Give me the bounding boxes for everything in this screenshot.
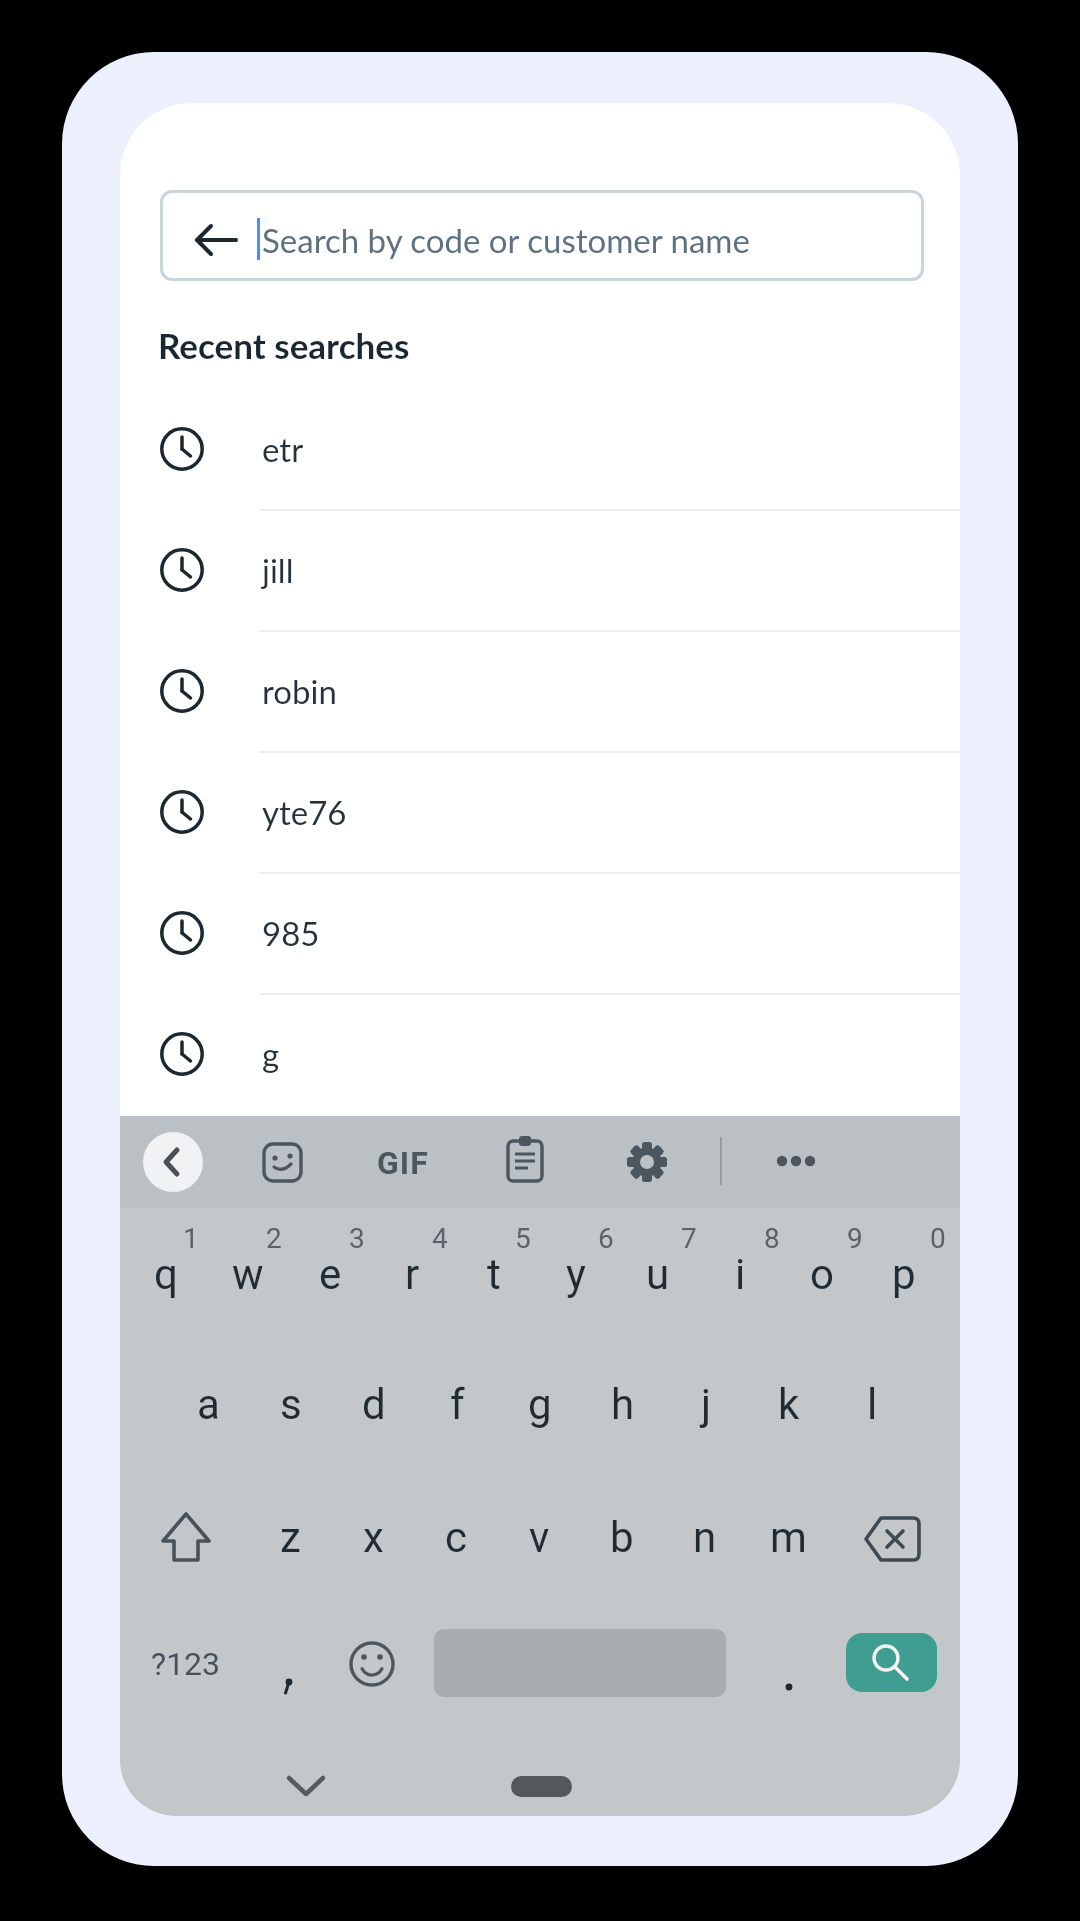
staticText: b [610, 1513, 634, 1562]
staticText: h [611, 1380, 635, 1429]
staticText: 1 [183, 1222, 199, 1255]
staticText: k [778, 1380, 800, 1429]
staticText: z [280, 1513, 301, 1562]
staticText: g [262, 1034, 280, 1074]
button[interactable]: u [603, 1218, 713, 1330]
staticText: Search by code or customer name [262, 220, 750, 260]
button[interactable]: z [235, 1481, 345, 1593]
button[interactable]: v [484, 1481, 594, 1593]
staticText: e [319, 1250, 342, 1299]
staticText: f [450, 1380, 465, 1429]
button[interactable]: l [817, 1348, 927, 1460]
staticText: a [197, 1380, 220, 1429]
button[interactable]: a [153, 1348, 263, 1460]
button[interactable]: g [120, 994, 960, 1114]
button[interactable]: p [849, 1218, 959, 1330]
button[interactable] [759, 1654, 819, 1714]
staticText: x [363, 1513, 384, 1562]
staticText: g [528, 1380, 552, 1429]
button[interactable]: etr [120, 389, 960, 509]
button[interactable] [852, 1499, 932, 1579]
button[interactable]: b [567, 1481, 677, 1593]
button[interactable] [511, 1776, 572, 1797]
button[interactable]: d [319, 1348, 429, 1460]
button[interactable] [160, 190, 924, 281]
button[interactable] [495, 1132, 555, 1192]
button[interactable]: y [521, 1218, 631, 1330]
staticText: etr [262, 429, 304, 469]
staticText: 985 [262, 913, 320, 953]
button[interactable] [846, 1633, 937, 1692]
button[interactable] [143, 1132, 203, 1192]
staticText: 3 [349, 1222, 365, 1255]
staticText: o [810, 1250, 834, 1299]
button[interactable]: r [357, 1218, 467, 1330]
button[interactable]: m [733, 1481, 843, 1593]
staticText: Recent searches [158, 324, 410, 366]
button[interactable] [252, 1132, 312, 1192]
staticText: 0 [930, 1222, 946, 1255]
button[interactable]: j [651, 1348, 761, 1460]
button[interactable]: yte76 [120, 752, 960, 872]
staticText: 6 [598, 1222, 614, 1255]
staticText: 8 [764, 1222, 780, 1255]
button[interactable] [276, 1766, 336, 1806]
staticText: 7 [681, 1222, 697, 1255]
staticText: i [735, 1250, 746, 1299]
staticText: c [445, 1513, 467, 1562]
staticText: 2 [266, 1222, 282, 1255]
button[interactable]: i [685, 1218, 795, 1330]
button[interactable]: e [275, 1218, 385, 1330]
staticText: w [232, 1250, 264, 1299]
button[interactable] [766, 1132, 826, 1192]
button[interactable]: x [318, 1481, 428, 1593]
button[interactable]: f [402, 1348, 512, 1460]
staticText: y [566, 1250, 586, 1299]
button[interactable]: c [401, 1481, 511, 1593]
staticText: n [693, 1513, 717, 1562]
button[interactable]: g [485, 1348, 595, 1460]
button[interactable]: o [767, 1218, 877, 1330]
staticText: s [280, 1380, 302, 1429]
button[interactable]: q [120, 1218, 221, 1330]
button[interactable] [186, 210, 246, 270]
button[interactable] [342, 1634, 402, 1694]
staticText: GIF [377, 1144, 429, 1182]
staticText: t [487, 1250, 501, 1299]
button[interactable] [617, 1132, 677, 1192]
button[interactable]: s [236, 1348, 346, 1460]
button[interactable]: k [734, 1348, 844, 1460]
staticText: d [362, 1380, 386, 1429]
staticText: p [892, 1250, 916, 1299]
staticText: jill [262, 550, 294, 590]
staticText: u [646, 1250, 670, 1299]
button[interactable]: 985 [120, 873, 960, 993]
staticText: l [867, 1380, 878, 1429]
button[interactable]: t [439, 1218, 549, 1330]
button[interactable]: jill [120, 510, 960, 630]
button[interactable]: robin [120, 631, 960, 751]
staticText: r [405, 1250, 420, 1299]
staticText: ?123 [151, 1645, 221, 1683]
staticText: yte76 [262, 792, 347, 832]
button[interactable]: GIF [363, 1133, 443, 1193]
staticText: v [529, 1513, 550, 1562]
staticText: 4 [432, 1222, 448, 1255]
button[interactable]: w [193, 1218, 303, 1330]
button[interactable] [259, 1634, 319, 1694]
staticText: m [770, 1513, 807, 1562]
staticText: robin [262, 671, 337, 711]
staticText: j [701, 1380, 712, 1429]
button[interactable] [146, 1497, 226, 1577]
button[interactable]: h [568, 1348, 678, 1460]
staticText: 9 [847, 1222, 863, 1255]
staticText: q [154, 1250, 178, 1299]
staticText: 5 [515, 1222, 531, 1255]
button[interactable]: ?123 [131, 1608, 241, 1720]
button[interactable]: n [650, 1481, 760, 1593]
